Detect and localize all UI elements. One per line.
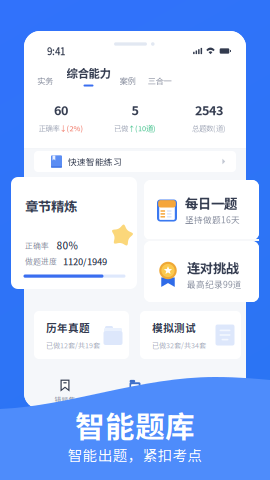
staticText: 智能题库 — [75, 403, 195, 446]
button[interactable]: 历年真题 — [34, 311, 129, 359]
staticText: 5 — [131, 100, 138, 119]
staticText: 60 — [54, 100, 68, 119]
staticText: 历年真题 — [46, 320, 90, 335]
staticText: 实务 — [37, 74, 53, 86]
staticText: 已做12套/共19套 — [46, 340, 100, 350]
staticText: (2%) — [66, 123, 83, 133]
staticText: 80% — [56, 238, 77, 252]
button[interactable]: 每日一题 — [144, 180, 259, 240]
staticText: 快速智能练习 — [68, 155, 122, 168]
button[interactable]: 三合一 — [147, 70, 171, 87]
staticText: 已做32套/共34套 — [152, 340, 206, 350]
staticText: 每日一题 — [185, 193, 237, 213]
staticText: 章节精炼 — [25, 196, 77, 215]
staticText: 2543 — [195, 100, 223, 119]
button[interactable]: 案例 — [119, 70, 135, 87]
staticText: 正确率 — [38, 123, 59, 133]
staticText: ↓ — [59, 123, 66, 133]
button[interactable]: 实务 — [37, 70, 53, 87]
button[interactable]: 收藏夹 — [105, 376, 165, 408]
staticText: 已做 — [114, 123, 128, 133]
staticText: 综合能力 — [66, 64, 110, 81]
button[interactable]: 错题集 — [35, 376, 95, 408]
staticText: 最高纪录99道 — [187, 278, 242, 290]
button[interactable]: 快速智能练习 — [34, 151, 236, 172]
button[interactable]: 连对挑战 — [144, 241, 259, 302]
staticText: 模拟测试 — [152, 320, 196, 335]
staticText: ↑ — [128, 123, 135, 133]
button[interactable]: 综合能力 — [66, 64, 110, 86]
staticText: 正确率 — [25, 240, 49, 251]
staticText: 坚持做题16天 — [185, 213, 240, 226]
staticText: 做题进度 — [25, 255, 57, 267]
staticText: 错题集 — [54, 395, 75, 404]
staticText: (10道) — [135, 123, 156, 133]
button[interactable]: 练习历史 — [175, 376, 235, 408]
staticText: 智能出题，紧扣考点 — [67, 444, 202, 465]
staticText: 1120/1949 — [63, 254, 107, 268]
staticText: 9:41 — [47, 44, 65, 58]
staticText: 总题数(道) — [192, 123, 226, 133]
staticText: 案例 — [119, 74, 135, 86]
button[interactable]: 模拟测试 — [140, 311, 241, 359]
button[interactable]: 章节精炼 — [11, 177, 137, 289]
staticText: 三合一 — [147, 74, 171, 86]
staticText: 连对挑战 — [187, 258, 239, 277]
